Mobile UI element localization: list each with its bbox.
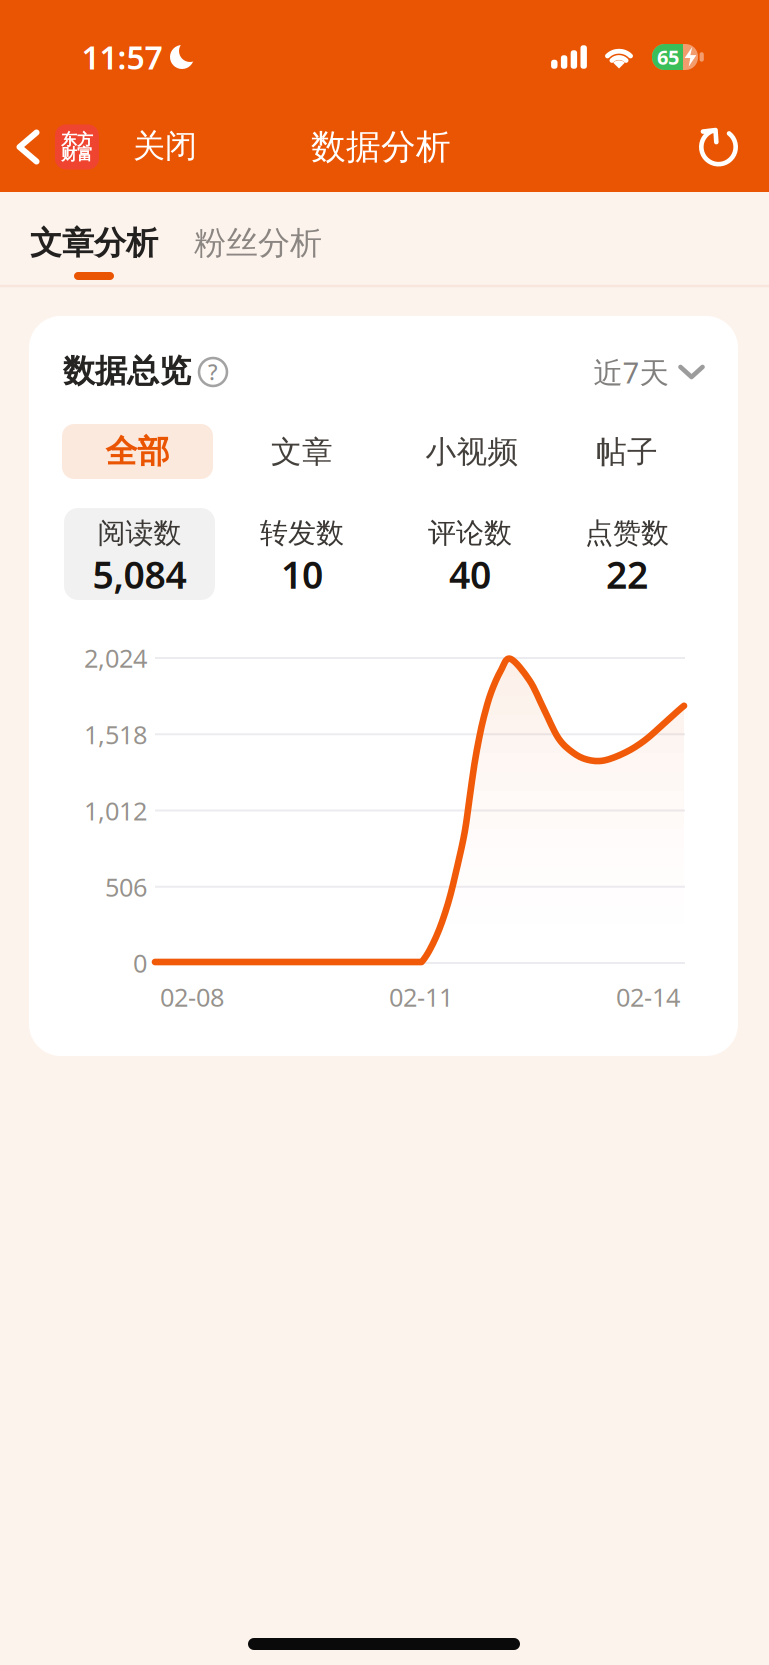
button[interactable]: Back xyxy=(8,122,47,171)
button[interactable]: 粉丝分析 xyxy=(194,223,322,263)
button[interactable]: 关闭 xyxy=(133,126,197,166)
button[interactable]: 小视频 xyxy=(425,433,518,471)
button[interactable]: 点赞数 xyxy=(551,508,702,600)
staticText: 近7天 xyxy=(593,352,668,391)
staticText: 帖子 xyxy=(596,433,658,471)
staticText: 2,024 xyxy=(84,641,147,675)
staticText: 数据分析 xyxy=(311,126,451,168)
staticText: 小视频 xyxy=(425,433,518,471)
staticText: 东方 xyxy=(61,130,93,149)
staticText: 数据总览 xyxy=(63,351,191,391)
button[interactable]: 阅读数 xyxy=(64,508,215,600)
button[interactable]: 文章 xyxy=(271,433,333,471)
button[interactable]: 近7天 xyxy=(593,352,704,391)
staticText: 1,518 xyxy=(84,717,147,751)
staticText: 10 xyxy=(281,549,323,599)
staticText: 65 xyxy=(657,44,679,70)
staticText: 0 xyxy=(133,946,147,980)
staticText: 506 xyxy=(105,870,147,904)
staticText: 11:57 xyxy=(81,36,162,78)
staticText: 02-14 xyxy=(616,980,680,1014)
staticText: 关闭 xyxy=(133,126,197,166)
staticText: 1,012 xyxy=(84,794,147,827)
staticText: 阅读数 xyxy=(97,516,181,550)
staticText: ? xyxy=(208,358,218,386)
button[interactable]: Help xyxy=(199,358,227,386)
staticText: 02-11 xyxy=(389,980,453,1014)
button[interactable]: 评论数 xyxy=(394,508,545,600)
staticText: 02-08 xyxy=(160,980,224,1014)
staticText: 评论数 xyxy=(428,516,512,550)
staticText: 22 xyxy=(606,549,648,599)
staticText: 财富 xyxy=(61,144,93,164)
button[interactable]: Refresh xyxy=(692,119,745,174)
staticText: 粉丝分析 xyxy=(194,223,322,263)
button[interactable]: 帖子 xyxy=(596,433,658,471)
staticText: 全部 xyxy=(105,432,169,471)
staticText: 40 xyxy=(449,549,491,599)
staticText: 文章 xyxy=(271,433,333,471)
button[interactable]: 文章分析 xyxy=(30,223,158,263)
staticText: 点赞数 xyxy=(585,516,669,550)
staticText: 5,084 xyxy=(92,549,186,599)
button[interactable]: 全部 xyxy=(62,424,213,479)
staticText: 文章分析 xyxy=(30,223,158,263)
staticText: 转发数 xyxy=(260,516,344,550)
button[interactable]: 转发数 xyxy=(226,508,377,600)
